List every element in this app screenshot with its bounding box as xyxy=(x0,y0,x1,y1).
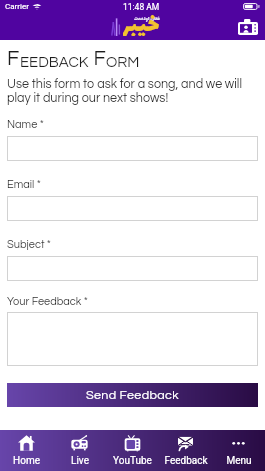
staticText: Feedback xyxy=(164,455,208,467)
staticText: EEDBACK xyxy=(20,55,89,70)
staticText: Your Feedback * xyxy=(7,296,88,307)
staticText: Email * xyxy=(7,179,41,190)
staticText: Name * xyxy=(7,119,44,130)
staticText: F xyxy=(7,48,20,70)
staticText: 11:48 AM xyxy=(123,2,160,12)
staticText: ORM xyxy=(106,55,140,70)
button[interactable]: Feedback xyxy=(159,430,212,471)
button[interactable] xyxy=(7,136,258,161)
staticText: خيبر xyxy=(123,8,160,36)
button[interactable]: Menu xyxy=(212,430,265,471)
button[interactable]: Photos xyxy=(238,19,258,35)
staticText: Menu xyxy=(226,455,252,467)
button[interactable]: Home xyxy=(0,430,53,471)
button[interactable] xyxy=(7,312,258,366)
staticText: Use this form to ask for a song, and we … xyxy=(7,78,242,104)
staticText: F xyxy=(89,48,106,70)
staticText: Carrier xyxy=(5,2,29,11)
staticText: Send Feedback xyxy=(86,389,179,402)
staticText: Home xyxy=(13,455,40,467)
button[interactable]: Live xyxy=(53,430,106,471)
button[interactable] xyxy=(7,256,258,281)
staticText: Subject * xyxy=(7,239,51,250)
button[interactable] xyxy=(7,196,258,221)
staticText: YouTube xyxy=(113,455,152,467)
button[interactable]: YouTube xyxy=(106,430,159,471)
staticText: فعال اودست xyxy=(134,14,160,23)
button[interactable]: Send Feedback xyxy=(7,383,258,407)
staticText: Live xyxy=(71,455,89,467)
